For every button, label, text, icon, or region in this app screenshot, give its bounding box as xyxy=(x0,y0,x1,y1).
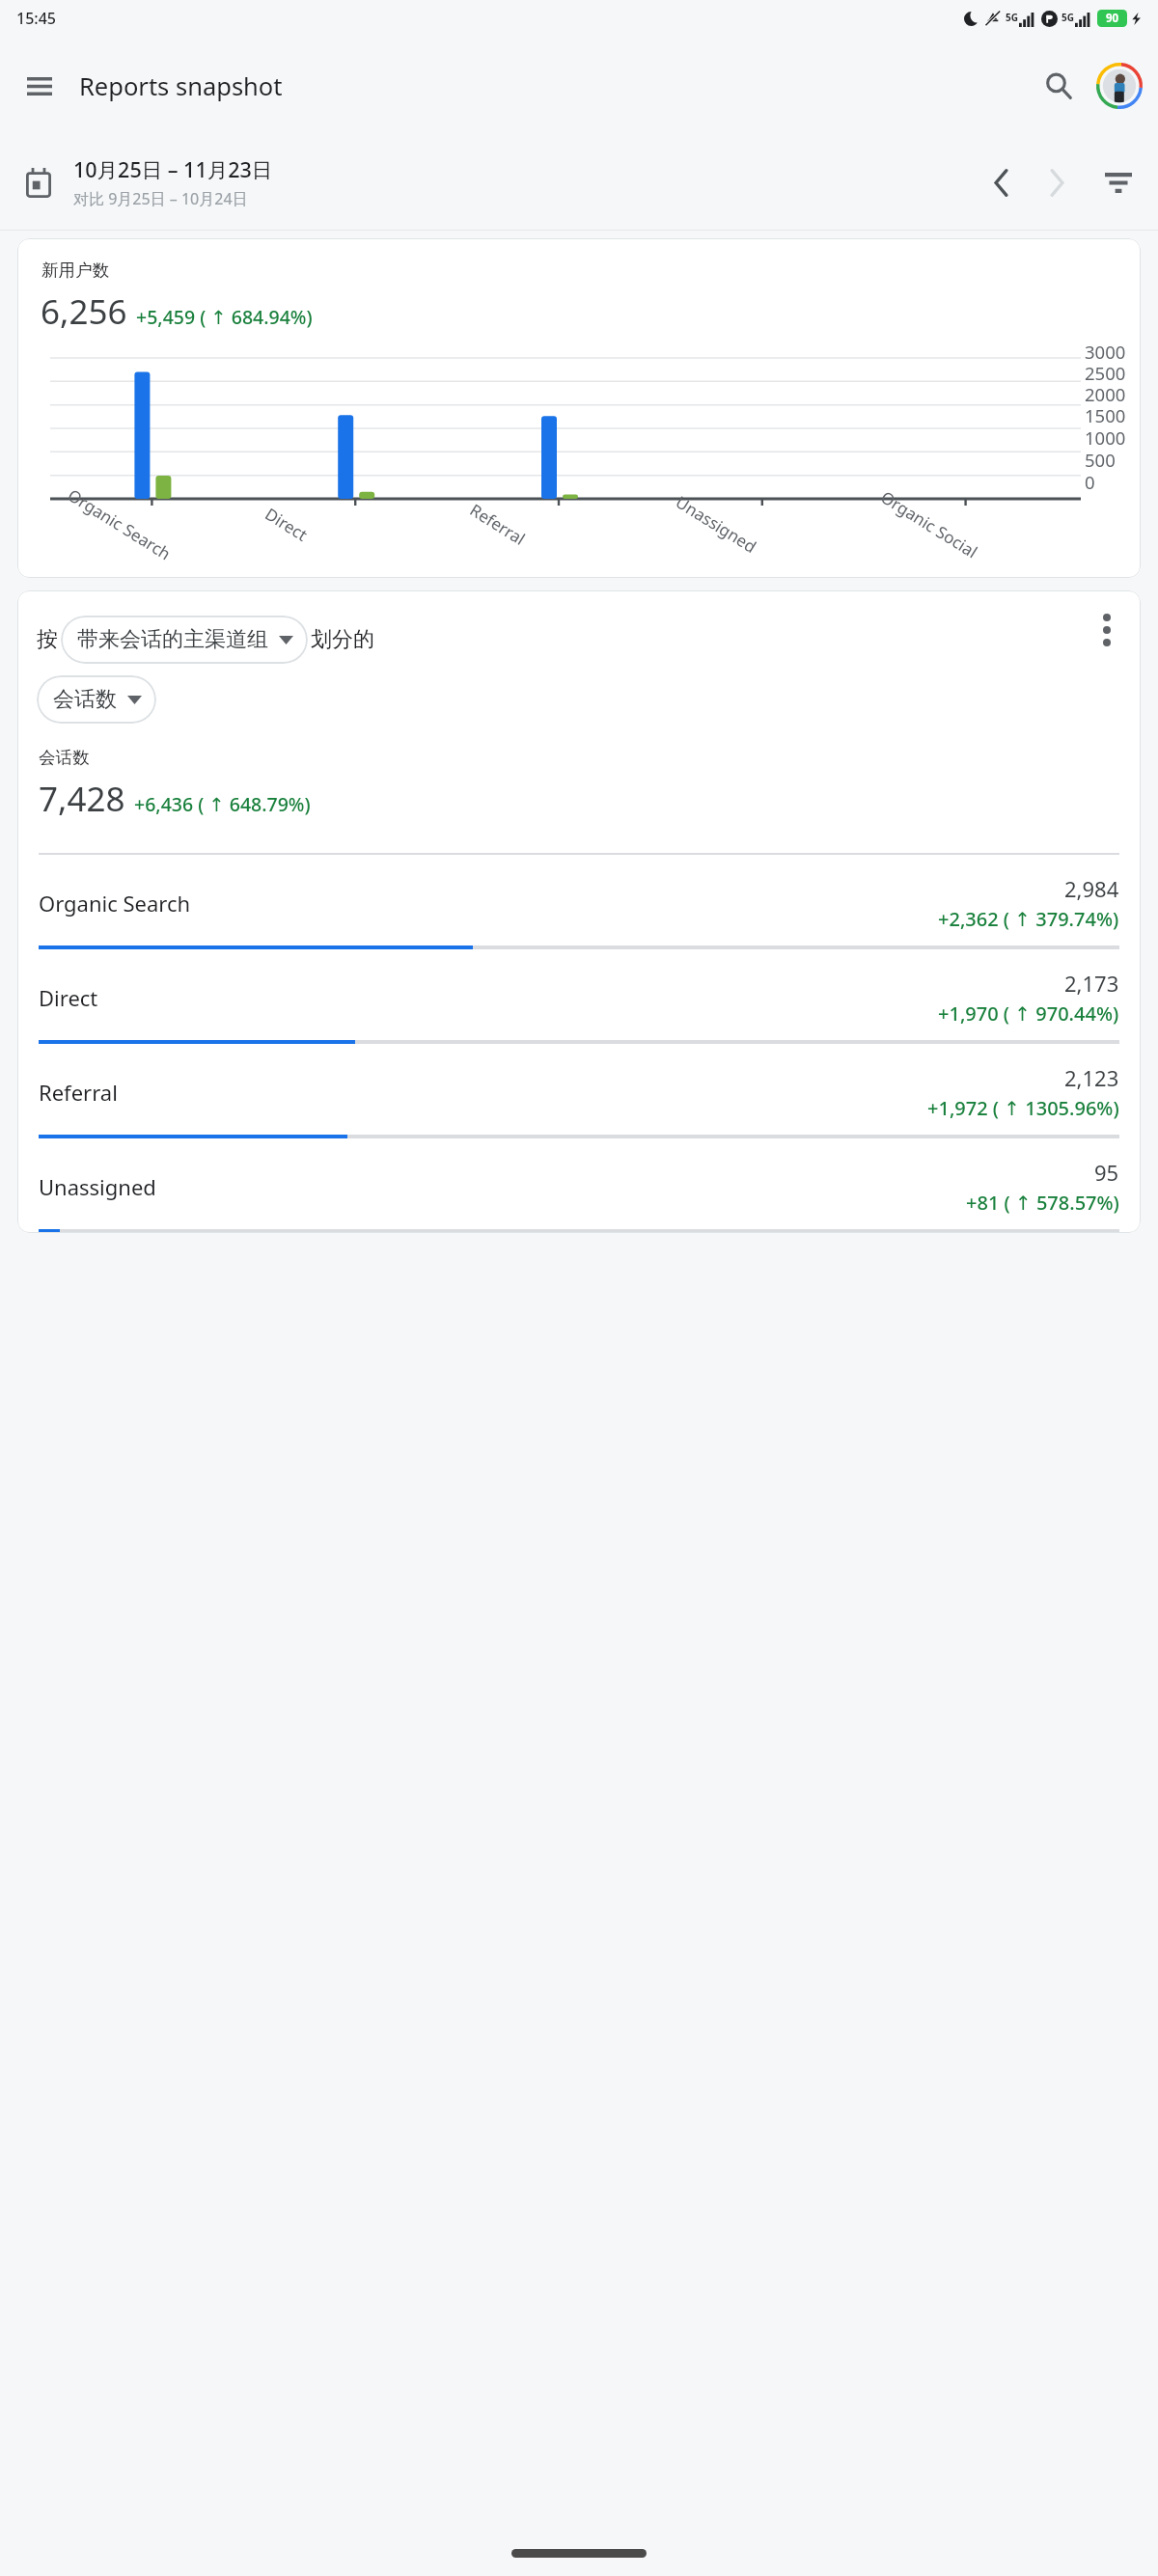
staticText: 对比 9月25日 – 10月24日 xyxy=(73,188,248,209)
button[interactable]: Search xyxy=(1033,60,1085,112)
button[interactable]: Date range xyxy=(19,163,58,202)
staticText: Organic Search xyxy=(39,889,938,918)
staticText: +1,972 ( ↑ 1305.96%) xyxy=(927,1095,1119,1121)
staticText: Reports snapshot xyxy=(79,69,1033,103)
button[interactable]: Previous period xyxy=(973,154,1029,210)
button[interactable]: More options xyxy=(1081,604,1133,656)
staticText: Unassigned xyxy=(672,491,761,558)
staticText: +5,459 ( ↑ 684.94%) xyxy=(136,304,313,330)
staticText: +81 ( ↑ 578.57%) xyxy=(966,1190,1119,1216)
staticText: 1000 xyxy=(1085,425,1126,448)
staticText: Direct xyxy=(39,983,938,1012)
staticText: 2,984 xyxy=(1064,874,1119,903)
staticText: +2,362 ( ↑ 379.74%) xyxy=(938,906,1119,932)
staticText: Organic Social xyxy=(877,486,982,563)
button[interactable]: Unassigned xyxy=(17,1138,1141,1233)
staticText: Unassigned xyxy=(39,1172,966,1201)
staticText: 划分的 xyxy=(311,626,374,653)
staticText: 0 xyxy=(1085,470,1095,492)
staticText: Direct xyxy=(261,503,312,546)
button[interactable]: Filter xyxy=(1092,156,1144,208)
button[interactable]: 带来会话的主渠道组 xyxy=(61,616,308,664)
staticText: 90 xyxy=(1106,11,1119,26)
staticText: 3000 xyxy=(1085,340,1126,361)
staticText: 2500 xyxy=(1085,361,1126,382)
staticText: 2,173 xyxy=(1064,969,1119,998)
staticText: 2000 xyxy=(1085,382,1126,403)
staticText: Organic Search xyxy=(64,484,176,565)
button[interactable]: Account xyxy=(1094,61,1144,111)
staticText: 2,123 xyxy=(1064,1063,1119,1092)
staticText: 会话数 xyxy=(39,747,90,768)
staticText: 6,256 xyxy=(41,288,127,335)
staticText: +1,970 ( ↑ 970.44%) xyxy=(938,1000,1119,1027)
staticText: 10月25日 – 11月23日 xyxy=(73,155,273,183)
button[interactable]: Direct xyxy=(17,949,1141,1044)
staticText: 95 xyxy=(1094,1158,1119,1187)
staticText: 7,428 xyxy=(39,776,125,822)
staticText: 500 xyxy=(1085,448,1116,470)
button[interactable]: 会话数 xyxy=(37,675,156,724)
staticText: Referral xyxy=(39,1078,927,1107)
staticText: 5G xyxy=(1061,11,1074,24)
button[interactable]: Referral xyxy=(17,1044,1141,1138)
staticText: Referral xyxy=(466,499,530,550)
staticText: 15:45 xyxy=(16,8,56,29)
staticText: 5G xyxy=(1006,11,1018,24)
staticText: 新用户数 xyxy=(41,260,109,281)
button[interactable]: Next period xyxy=(1029,154,1085,210)
staticText: 带来会话的主渠道组 xyxy=(77,626,268,653)
staticText: 按 xyxy=(37,626,58,653)
staticText: +6,436 ( ↑ 648.79%) xyxy=(134,791,311,817)
button[interactable]: Organic Search xyxy=(17,855,1141,949)
button[interactable]: Open navigation menu xyxy=(14,60,66,112)
staticText: 1500 xyxy=(1085,403,1126,425)
staticText: 会话数 xyxy=(53,686,117,713)
